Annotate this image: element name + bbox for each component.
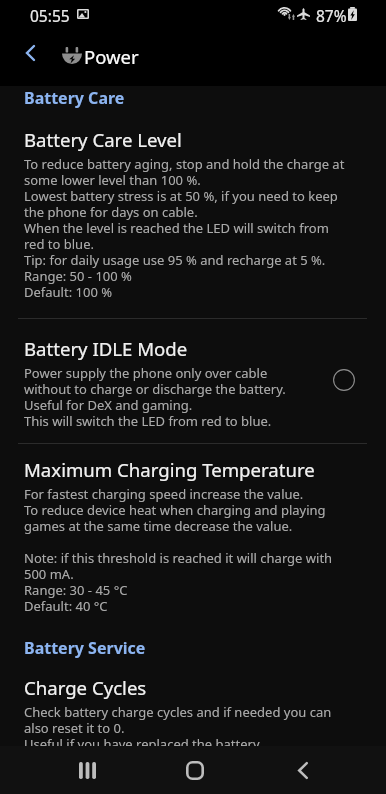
button[interactable]: Charge Cycles <box>0 675 386 752</box>
staticText: Battery Care Level <box>24 127 182 152</box>
staticText: Check battery charge cycles and if neede… <box>24 704 332 752</box>
button[interactable]: Maximum Charging Temperature <box>0 457 386 614</box>
button[interactable]: Battery Care Level <box>0 127 386 300</box>
button[interactable]: Back <box>275 746 331 794</box>
button[interactable]: Navigate up <box>11 34 49 72</box>
staticText: 87% <box>316 5 347 26</box>
staticText: Battery IDLE Mode <box>24 336 188 361</box>
staticText: Maximum Charging Temperature <box>24 457 315 482</box>
button[interactable]: Battery IDLE Mode switch <box>329 365 359 395</box>
staticText: To reduce battery aging, stop and hold t… <box>24 156 345 300</box>
staticText: 05:55 <box>30 5 70 26</box>
staticText: Charge Cycles <box>24 675 147 700</box>
staticText: For fastest charging speed increase the … <box>24 486 333 614</box>
button[interactable]: Battery IDLE Mode <box>0 336 386 429</box>
staticText: Power supply the phone only over cable w… <box>24 365 286 429</box>
button[interactable]: Home <box>167 746 223 794</box>
staticText: Power <box>84 44 139 69</box>
staticText: Battery Service <box>24 637 146 659</box>
staticText: Battery Care <box>24 87 125 109</box>
button[interactable]: Recent apps <box>59 746 115 794</box>
